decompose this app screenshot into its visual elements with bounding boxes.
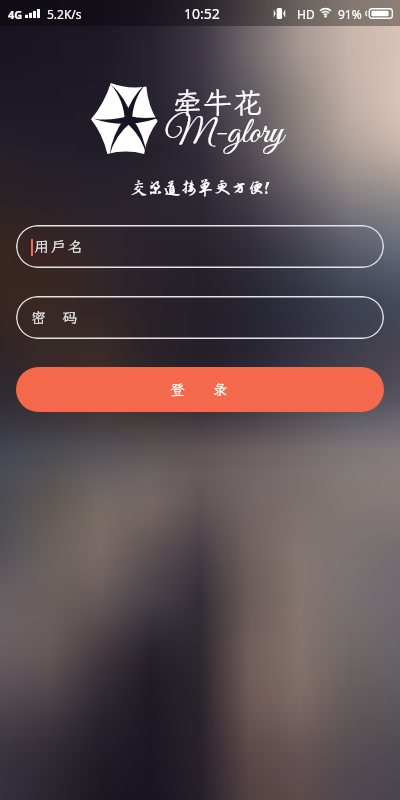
staticText: 10:52 [184,4,220,23]
staticText: HD [297,6,315,22]
staticText: M-glory [165,111,284,156]
button[interactable]: 密 码 [16,296,384,339]
staticText: 5.2K/s [47,6,82,22]
staticText: 交梁道接单更方便! [0,179,400,197]
button[interactable]: 登 录 [16,367,384,412]
staticText: 用户名 [34,237,86,257]
staticText: 91% [338,6,362,22]
staticText: 4G [8,7,23,22]
staticText: 登 录 [170,380,231,400]
staticText: 牵牛花 [173,83,264,121]
button[interactable]: 用户名 [16,225,384,268]
staticText: 密 码 [31,308,80,328]
